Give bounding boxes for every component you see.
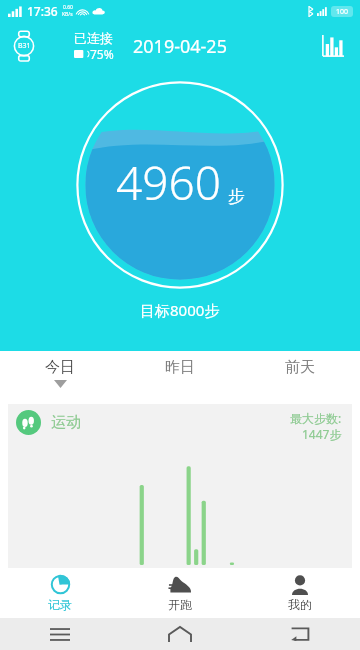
button[interactable]: 记录 (0, 568, 120, 618)
button[interactable]: 2019-04-25 (133, 34, 227, 59)
button[interactable]: 昨日 (120, 351, 240, 404)
staticText: 我的 (288, 597, 312, 612)
staticText: 前天 (285, 358, 315, 377)
button[interactable]: 我的 (240, 568, 360, 618)
staticText: 4960 (116, 151, 222, 214)
staticText: 目标8000步 (140, 300, 220, 320)
staticText: 75% (90, 46, 114, 62)
staticText: 开跑 (168, 597, 192, 612)
staticText: KB/s (62, 11, 73, 18)
staticText: 已连接 (74, 30, 113, 46)
staticText: 最大步数: (290, 410, 342, 426)
staticText: 步 (228, 186, 245, 207)
staticText: 17:36 (27, 3, 58, 19)
button[interactable]: Back (240, 618, 360, 650)
button[interactable]: B31 (8, 30, 114, 62)
button[interactable]: Home (120, 618, 240, 650)
staticText: 记录 (48, 597, 72, 612)
button[interactable]: 前天 (240, 351, 360, 404)
button[interactable]: Menu (0, 618, 120, 650)
staticText: 昨日 (165, 358, 195, 377)
staticText: 运动 (51, 413, 81, 432)
button[interactable]: 开跑 (120, 568, 240, 618)
staticText: 100 (336, 7, 349, 17)
staticText: 1447步 (302, 426, 342, 442)
button[interactable]: 运动 (8, 404, 352, 568)
button[interactable]: Statistics (316, 29, 350, 63)
staticText: B31 (18, 41, 31, 51)
button[interactable]: 今日 (0, 351, 120, 404)
staticText: 0.60 (63, 4, 73, 11)
staticText: 今日 (45, 358, 75, 377)
